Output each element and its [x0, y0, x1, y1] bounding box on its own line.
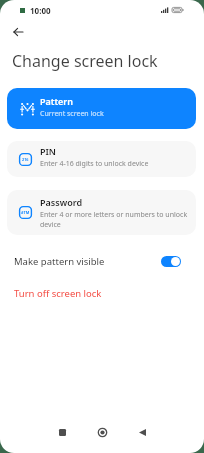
staticText: 10:00 — [30, 5, 51, 16]
staticText: Enter 4-16 digits to unlock device — [40, 159, 149, 169]
staticText: Change screen lock — [12, 50, 158, 72]
button[interactable]: Pattern — [7, 88, 196, 129]
button[interactable] — [11, 25, 25, 39]
button[interactable] — [48, 418, 76, 446]
button[interactable]: 216 — [7, 141, 196, 177]
button[interactable]: Turn off screen lock — [14, 287, 102, 300]
staticText: #TM — [21, 210, 30, 215]
staticText: Current screen lock — [40, 109, 104, 119]
staticText: Make pattern visible — [14, 255, 105, 268]
button[interactable] — [161, 256, 181, 267]
staticText: Enter 4 or more letters or numbers to un… — [40, 210, 194, 230]
staticText: Password — [40, 196, 83, 208]
button[interactable] — [128, 418, 156, 446]
staticText: PIN — [40, 145, 57, 157]
button[interactable] — [88, 418, 116, 446]
button[interactable]: Make pattern visible — [14, 252, 181, 270]
staticText: Pattern — [40, 95, 74, 107]
button[interactable]: #TM — [7, 190, 196, 235]
staticText: 216 — [22, 157, 29, 162]
